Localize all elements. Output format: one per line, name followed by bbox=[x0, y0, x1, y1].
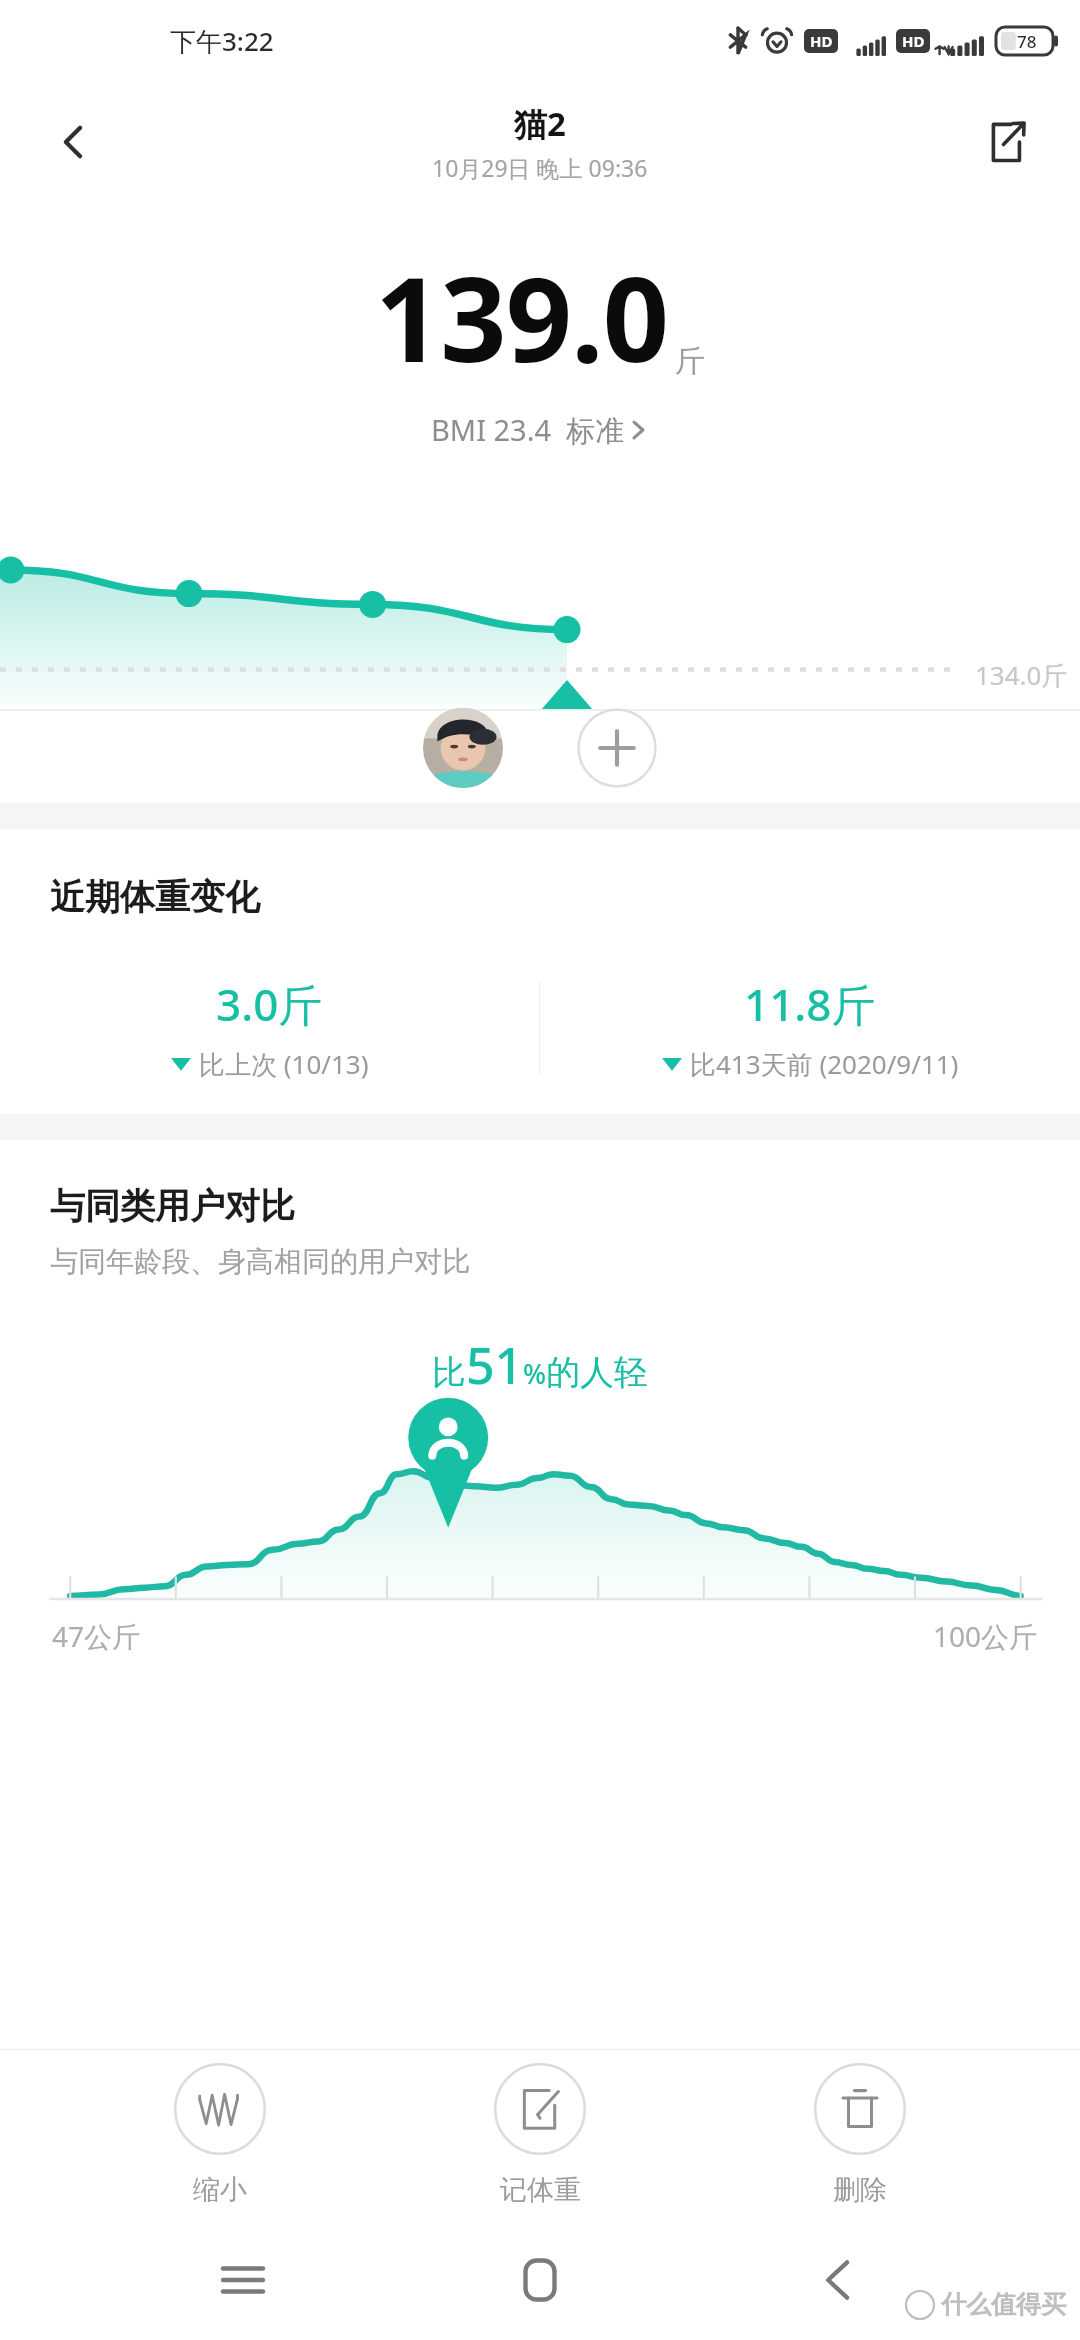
button[interactable]: Back bbox=[34, 102, 114, 182]
button[interactable]: Share bbox=[966, 102, 1046, 182]
staticText: 139.0 bbox=[375, 238, 669, 396]
staticText: 与同类用户对比 bbox=[50, 1184, 295, 1228]
button[interactable]: Add user bbox=[577, 708, 657, 788]
button[interactable]: 删除 bbox=[760, 2063, 960, 2207]
staticText: 删除 bbox=[833, 2173, 887, 2207]
staticText: 比413天前 (2020/9/11) bbox=[690, 1046, 959, 1082]
staticText: 下午3:22 bbox=[170, 23, 274, 59]
button[interactable]: 记体重 bbox=[440, 2063, 640, 2207]
button[interactable]: 缩小 bbox=[120, 2063, 320, 2207]
staticText: 100公斤 bbox=[933, 1617, 1038, 1655]
staticText: 3.0斤 bbox=[216, 974, 323, 1034]
button[interactable]: User avatar bbox=[423, 708, 503, 788]
staticText: 记体重 bbox=[500, 2173, 581, 2207]
staticText: 134.0斤 bbox=[975, 657, 1068, 693]
button[interactable]: Home bbox=[485, 2225, 595, 2335]
staticText: HD bbox=[902, 31, 925, 51]
staticText: 猫2 bbox=[514, 101, 566, 146]
button[interactable]: Recents bbox=[188, 2225, 298, 2335]
staticText: 47公斤 bbox=[52, 1617, 141, 1655]
staticText: 缩小 bbox=[193, 2173, 247, 2207]
staticText: 近期体重变化 bbox=[50, 875, 260, 919]
staticText: 什么值得买 bbox=[941, 2289, 1066, 2320]
staticText: 10月29日 晚上 09:36 bbox=[432, 152, 648, 183]
staticText: 比上次 (10/13) bbox=[199, 1046, 369, 1082]
staticText: 比51%的人轻 bbox=[0, 1331, 1080, 1399]
button[interactable]: Back bbox=[783, 2225, 893, 2335]
staticText: 11.8斤 bbox=[744, 974, 876, 1034]
staticText: 斤 bbox=[675, 342, 705, 380]
staticText: BMI 23.4 标准 bbox=[431, 410, 625, 450]
button[interactable]: 3.0斤 bbox=[0, 965, 539, 1090]
staticText: 与同年龄段、身高相同的用户对比 bbox=[50, 1244, 470, 1279]
button[interactable]: 11.8斤 bbox=[540, 965, 1080, 1090]
staticText: 78 bbox=[1017, 30, 1037, 53]
staticText: HD bbox=[810, 31, 833, 51]
button[interactable]: BMI 23.4 标准 bbox=[421, 406, 659, 454]
